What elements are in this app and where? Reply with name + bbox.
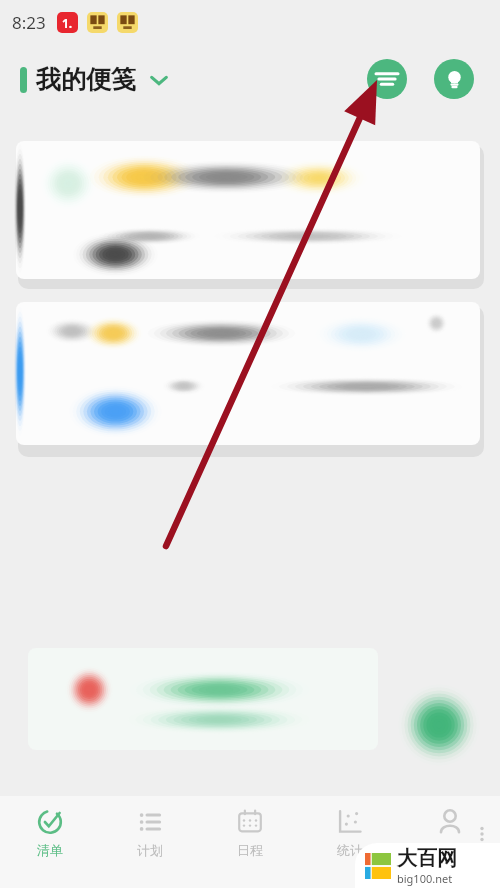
button[interactable]: 我的便笺 <box>20 64 172 95</box>
button[interactable]: 清单 <box>0 796 100 888</box>
button[interactable]: 计划 <box>100 796 200 888</box>
staticText: 我的便笺 <box>36 64 136 95</box>
button[interactable]: Tips <box>434 59 474 99</box>
staticText: 1. <box>62 15 73 31</box>
button[interactable]: Add note <box>396 682 482 768</box>
staticText: 8:23 <box>12 11 46 34</box>
button[interactable]: 日程 <box>200 796 300 888</box>
staticText: 计划 <box>137 842 163 858</box>
staticText: 日程 <box>237 842 263 858</box>
staticText: 清单 <box>37 842 63 858</box>
button[interactable]: Profile <box>400 796 500 888</box>
staticText: 大百网 <box>397 846 457 871</box>
staticText: big100.net <box>397 871 453 886</box>
button[interactable]: More options <box>470 822 494 846</box>
button[interactable] <box>14 139 486 287</box>
button[interactable]: 统计 <box>300 796 400 888</box>
button[interactable]: Sort notes <box>367 59 407 99</box>
button[interactable] <box>14 300 486 455</box>
staticText: 统计 <box>337 842 363 858</box>
